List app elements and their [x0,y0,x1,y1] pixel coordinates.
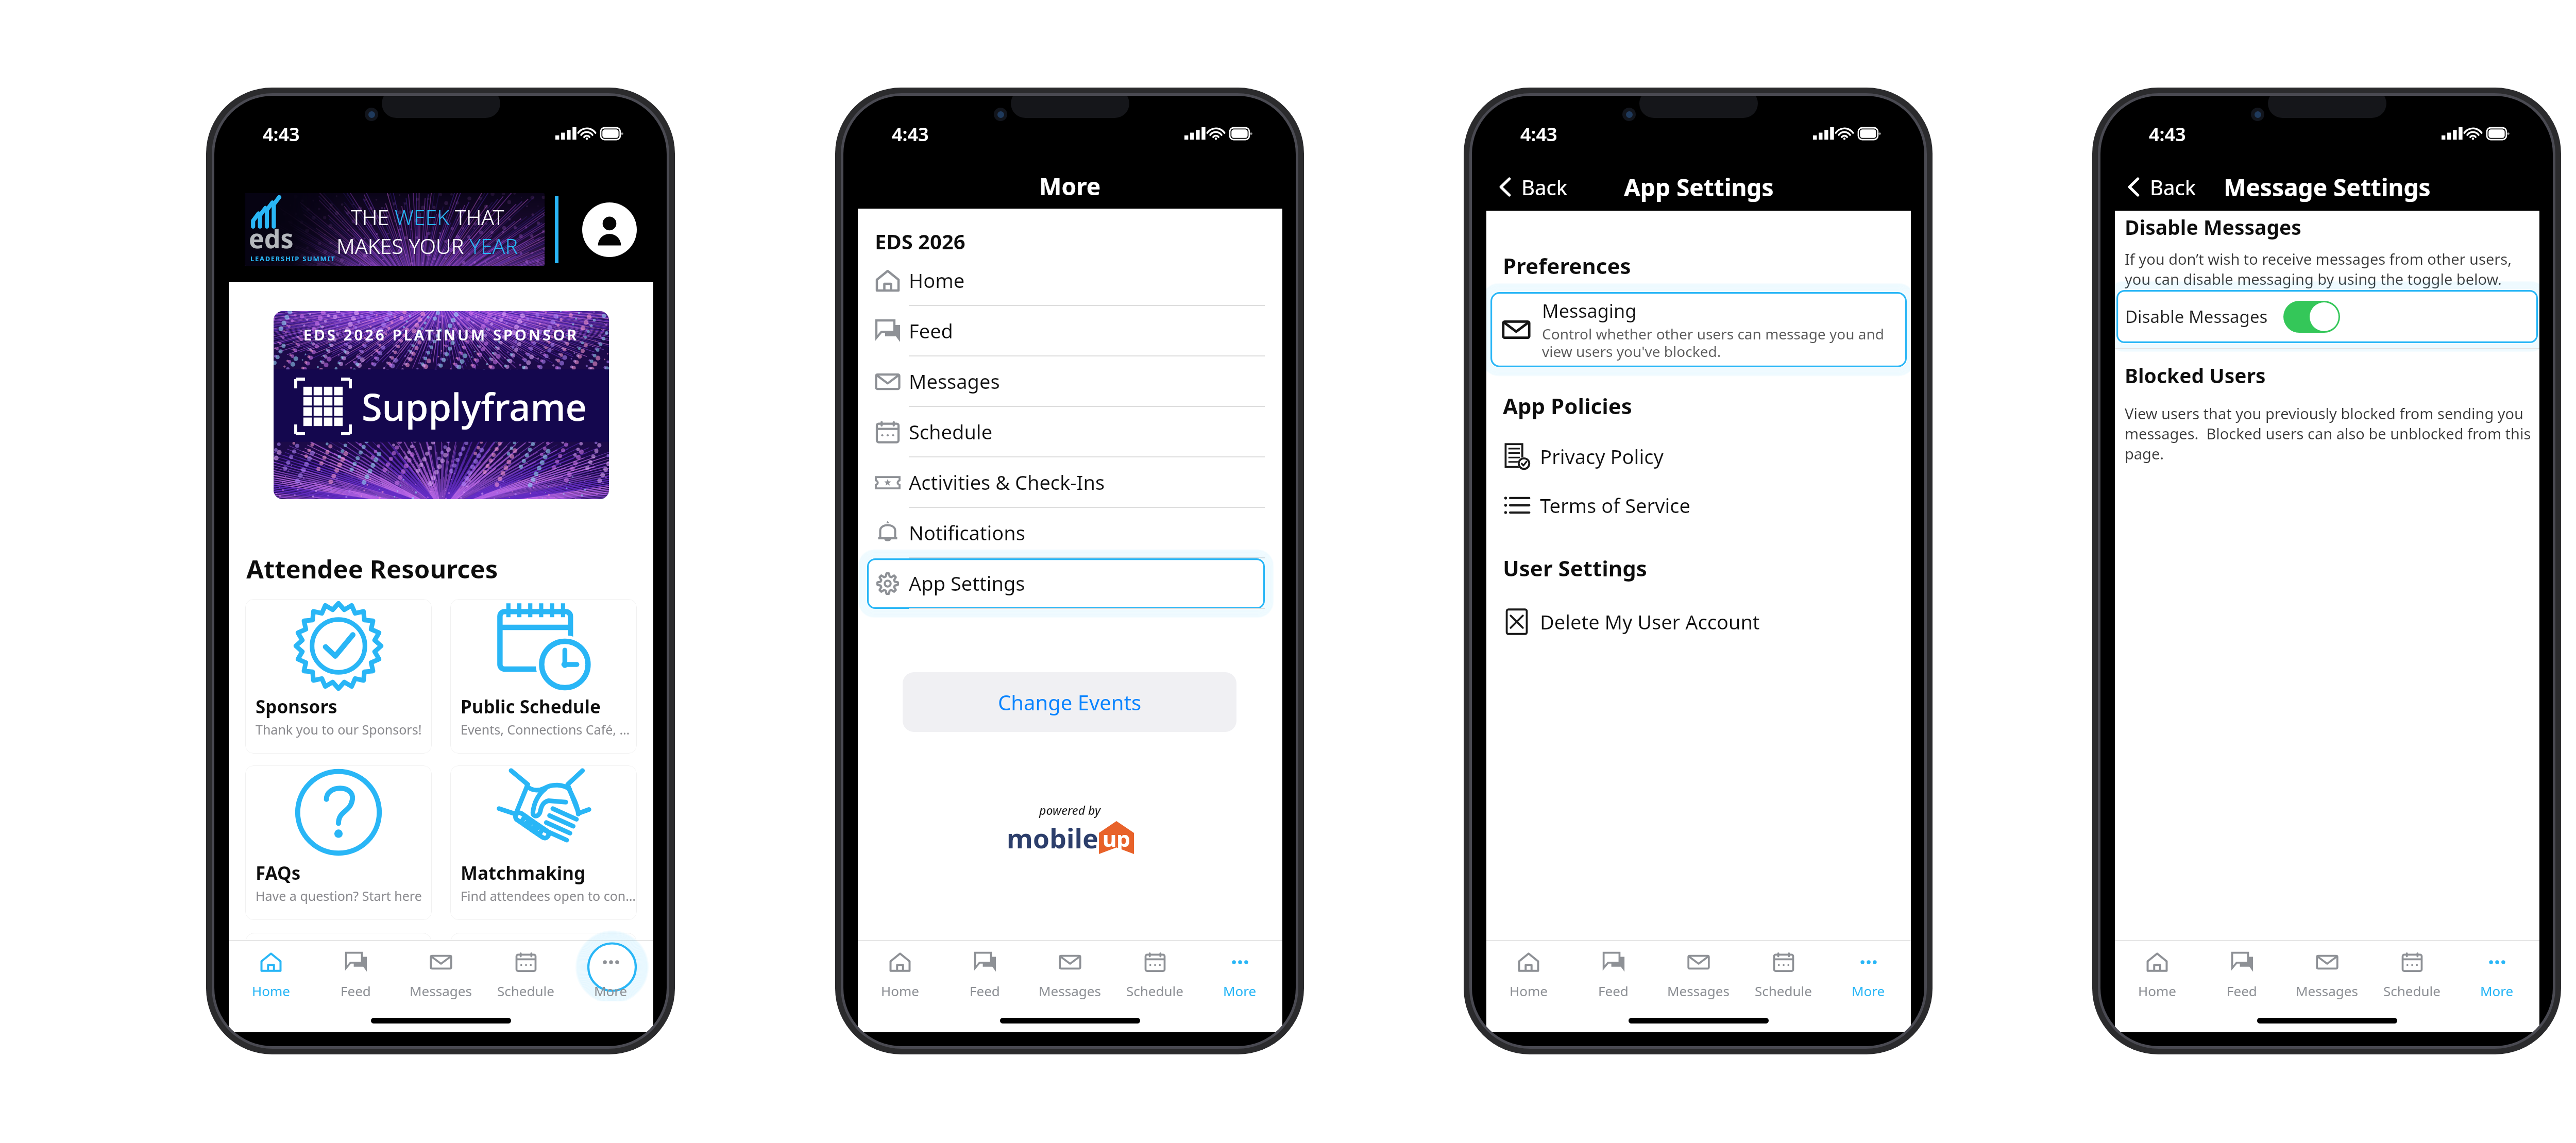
staticText: Messages [909,368,1000,395]
button[interactable]: Messages [867,356,1265,407]
button[interactable]: Matchmaking [450,765,637,920]
staticText: If you don’t wish to receive messages fr… [2125,249,2536,289]
staticText: Feed [1598,982,1629,1000]
staticText: Messages [2296,982,2358,1000]
staticText: 4:43 [892,122,929,147]
staticText: Change Events [998,688,1142,716]
button[interactable]: Activities & Check-Ins [867,457,1265,508]
button[interactable]: Back [2124,173,2196,201]
staticText: More [2480,982,2514,1000]
staticText: Attendee Resources [246,552,498,586]
staticText: 4:43 [263,122,300,147]
staticText: More [1852,982,1885,1000]
button[interactable]: Privacy Policy [1503,440,1911,473]
button[interactable]: Messages [1656,941,1741,1000]
staticText: THAT [455,202,504,231]
staticText: Messages [1039,982,1101,1000]
button[interactable]: Home [2115,941,2199,1000]
staticText: Schedule [497,982,554,1000]
button[interactable]: Delete My User Account [1503,605,1911,638]
button[interactable]: Schedule [483,941,568,1000]
button[interactable]: Feed [1571,941,1656,1000]
button[interactable]: Notifications [867,508,1265,558]
staticText: Feed [2227,982,2257,1000]
staticText: Home [881,982,919,1000]
staticText: Messages [410,982,472,1000]
button[interactable]: FAQs [245,765,432,920]
staticText: EDS 2026 [875,227,965,255]
staticText: App Settings [909,570,1025,596]
button[interactable]: Public Schedule [450,599,637,754]
button[interactable]: Messages [2284,941,2369,1000]
button[interactable]: Home [229,941,313,1000]
button[interactable]: Change Events [903,672,1236,732]
staticText: Preferences [1503,251,1631,280]
staticText: View users that you previously blocked f… [2125,403,2536,464]
staticText: up [1103,824,1130,853]
staticText: Back [1521,173,1567,201]
button[interactable]: EDS 2026 PLATINUM SPONSOR [274,311,609,499]
staticText: LEADERSHIP SUMMIT [250,254,336,263]
staticText: Feed [341,982,371,1000]
staticText: Matchmaking [461,861,586,885]
staticText: FAQs [256,861,301,885]
staticText: Home [252,982,290,1000]
button[interactable]: Back [1496,173,1567,201]
button[interactable]: More [2454,941,2539,1000]
staticText: THE [351,202,395,231]
staticText: Supplyframe [362,381,587,432]
button[interactable]: Home [867,255,1265,306]
staticText: Messages [1667,982,1730,1000]
staticText: Delete My User Account [1540,608,1760,635]
staticText: Home [1510,982,1548,1000]
button[interactable]: Schedule [1112,941,1197,1000]
staticText: Feed [970,982,1000,1000]
button[interactable]: Disable Messages [2116,290,2538,343]
button[interactable]: Home [1486,941,1571,1000]
staticText: powered by [1039,802,1101,818]
staticText: User Settings [1503,553,1647,583]
staticText: Privacy Policy [1540,443,1664,470]
staticText: Home [2138,982,2176,1000]
staticText: 4:43 [1520,122,1557,147]
button[interactable]: Schedule [2369,941,2454,1000]
button[interactable]: Schedule [1741,941,1826,1000]
button[interactable]: More [568,941,653,1000]
staticText: More [1223,982,1257,1000]
staticText: YEAR [469,231,518,260]
staticText: eds [249,221,294,256]
button[interactable]: Feed [313,941,398,1000]
staticText: Events, Connections Café, and mo… [461,721,636,738]
button[interactable]: Messages [1027,941,1112,1000]
button[interactable]: More [1197,941,1282,1000]
staticText: WEEK [395,202,455,231]
staticText: App Policies [1503,391,1632,420]
button[interactable]: Profile [582,202,637,257]
staticText: Home [909,267,965,294]
staticText: Disable Messages [2125,305,2268,328]
button[interactable]: Home [858,941,942,1000]
staticText: Back [2150,173,2196,201]
staticText: Find attendees open to connecting [461,887,636,905]
staticText: More [594,982,628,1000]
button[interactable]: Feed [867,306,1265,356]
button[interactable]: Messaging [1490,292,1907,367]
button[interactable]: Terms of Service [1503,489,1911,522]
staticText: Notifications [909,519,1026,546]
staticText: Sponsors [256,694,337,719]
button[interactable]: Messages [398,941,483,1000]
staticText: Feed [909,317,953,344]
staticText: Messaging [1542,298,1637,323]
staticText: App Settings [1624,171,1774,203]
button[interactable]: More [1826,941,1911,1000]
staticText: Schedule [2383,982,2441,1000]
staticText: Blocked Users [2125,362,2266,389]
button[interactable]: Sponsors [245,599,432,754]
staticText: Disable Messages [2125,213,2301,241]
button[interactable]: Feed [942,941,1027,1000]
button[interactable]: Schedule [867,407,1265,457]
button[interactable]: Feed [2199,941,2284,1000]
staticText: Message Settings [2224,171,2431,203]
staticText: Schedule [1755,982,1812,1000]
button[interactable]: App Settings [867,558,1265,609]
